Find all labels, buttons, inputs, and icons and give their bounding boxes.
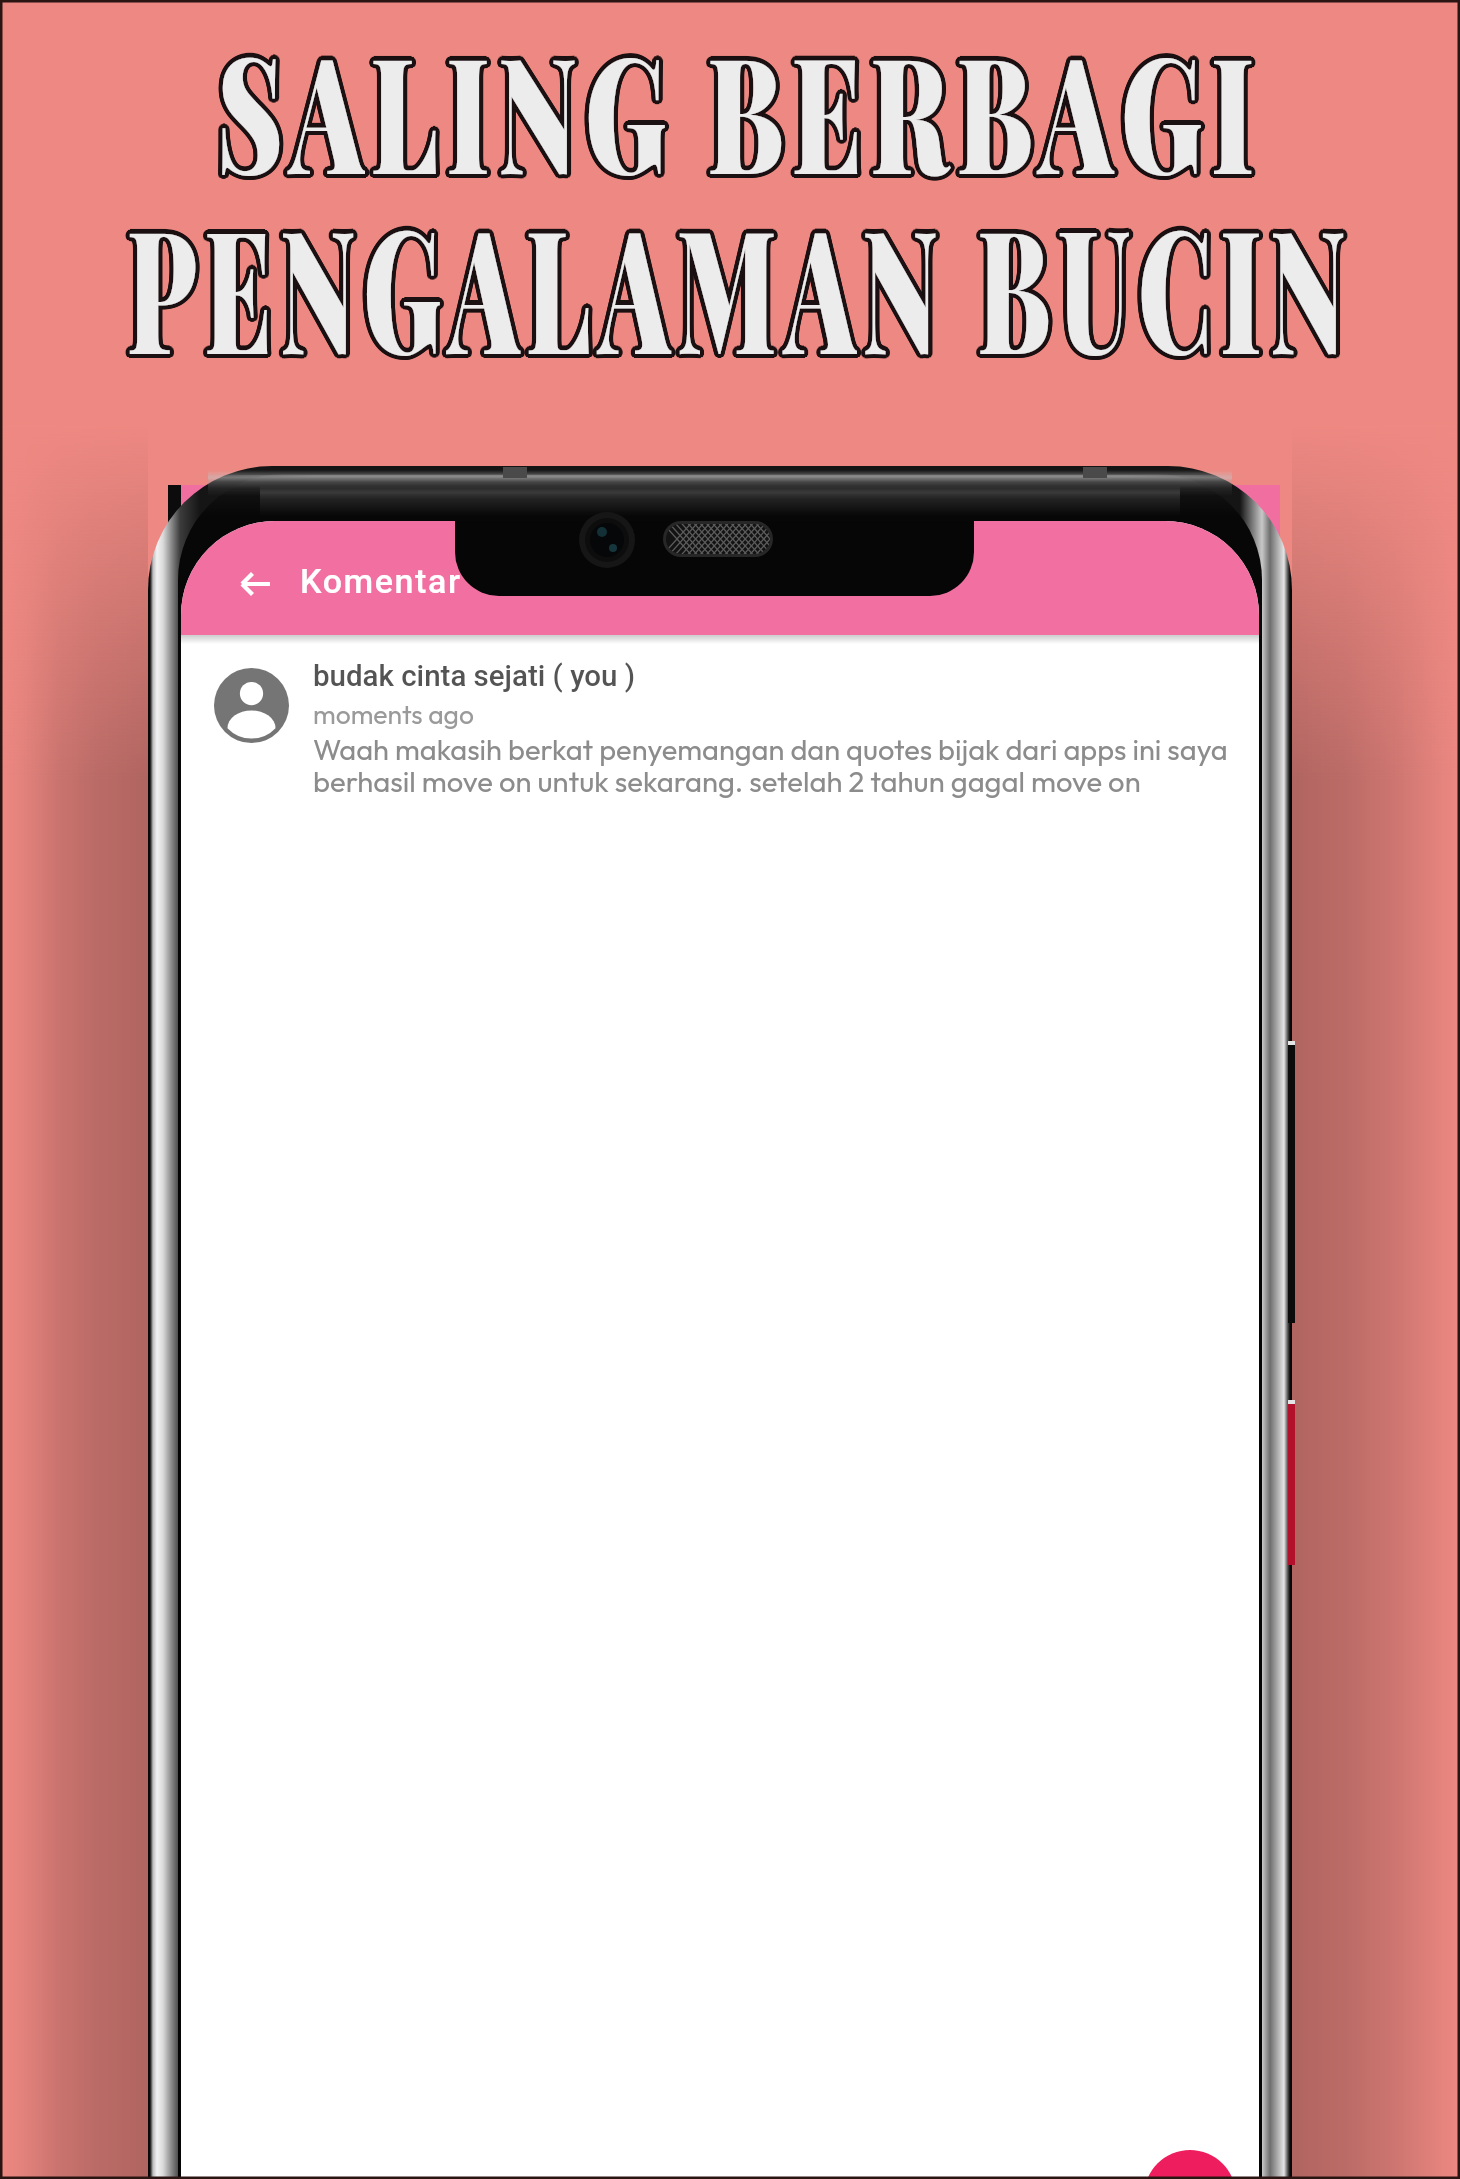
staticText: moments ago [313, 697, 474, 730]
staticText: Waah makasih berkat penyemangan dan quot… [313, 731, 1228, 768]
button[interactable]: budak cinta sejati ( you ) [181, 640, 1259, 805]
staticText: budak cinta sejati ( you ) [313, 659, 636, 694]
button[interactable]: Back [227, 555, 285, 613]
staticText: Komentar [300, 561, 462, 601]
button[interactable]: Add comment [1144, 2150, 1236, 2179]
staticText: berhasil move on untuk sekarang. setelah… [313, 763, 1141, 800]
